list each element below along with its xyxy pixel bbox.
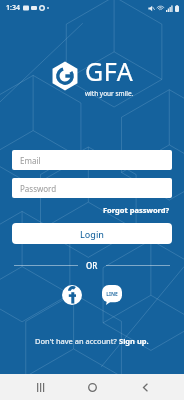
button[interactable]: Sign in with LINE (102, 285, 122, 305)
button[interactable]: Forgot password? (101, 203, 172, 217)
staticText: Login (80, 228, 104, 240)
staticText: Password (20, 183, 57, 194)
staticText: LINE (106, 291, 118, 298)
button[interactable]: Recent apps (27, 374, 53, 400)
staticText: Don't have an account? (35, 336, 119, 346)
staticText: GFA (85, 54, 134, 88)
button[interactable]: Back (132, 374, 158, 400)
button[interactable]: Home (79, 374, 105, 400)
staticText: 1:34 (6, 3, 20, 13)
button[interactable]: Login (12, 223, 172, 244)
staticText: Email (20, 155, 41, 166)
staticText: Forgot password? (103, 205, 170, 215)
staticText: with your smile. (85, 89, 134, 98)
button[interactable]: Password (12, 178, 172, 198)
staticText: OR (86, 260, 98, 271)
staticText: Sign up. (119, 336, 149, 346)
button[interactable]: Sign in with Facebook (62, 285, 82, 305)
button[interactable]: Don't have an account? (31, 332, 153, 350)
button[interactable]: Email (12, 150, 172, 170)
